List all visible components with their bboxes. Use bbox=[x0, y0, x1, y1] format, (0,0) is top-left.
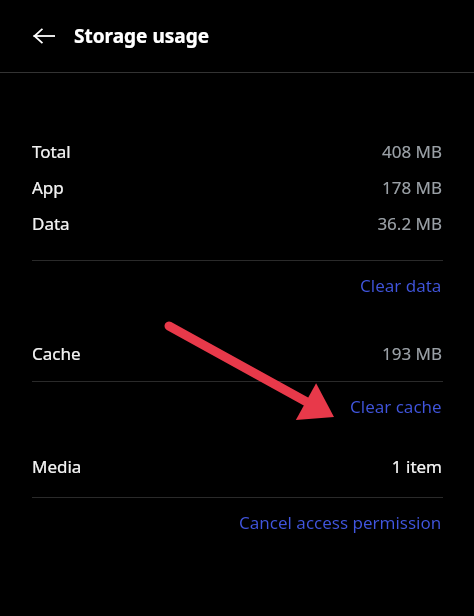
staticText: Media bbox=[32, 455, 82, 478]
button[interactable]: Media bbox=[0, 448, 474, 484]
staticText: Clear cache bbox=[350, 395, 442, 418]
staticText: Cache bbox=[32, 342, 81, 365]
button[interactable]: Clear data bbox=[0, 261, 474, 309]
staticText: 36.2 MB bbox=[377, 212, 442, 235]
staticText: 178 MB bbox=[381, 176, 442, 199]
staticText: Data bbox=[32, 212, 70, 235]
button[interactable]: App bbox=[0, 169, 474, 205]
button[interactable]: Total bbox=[0, 133, 474, 169]
staticText: Storage usage bbox=[74, 23, 209, 49]
staticText: 193 MB bbox=[381, 342, 442, 365]
staticText: 408 MB bbox=[381, 140, 442, 163]
staticText: App bbox=[32, 176, 64, 199]
staticText: 1 item bbox=[391, 455, 442, 478]
button[interactable]: Back bbox=[22, 14, 66, 58]
staticText: Total bbox=[32, 140, 71, 163]
button[interactable]: Clear cache bbox=[0, 382, 474, 430]
staticText: Clear data bbox=[360, 274, 442, 297]
staticText: Cancel access permission bbox=[239, 511, 442, 534]
button[interactable]: Cache bbox=[0, 335, 474, 371]
button[interactable]: Data bbox=[0, 205, 474, 241]
button[interactable]: Cancel access permission bbox=[0, 498, 474, 546]
